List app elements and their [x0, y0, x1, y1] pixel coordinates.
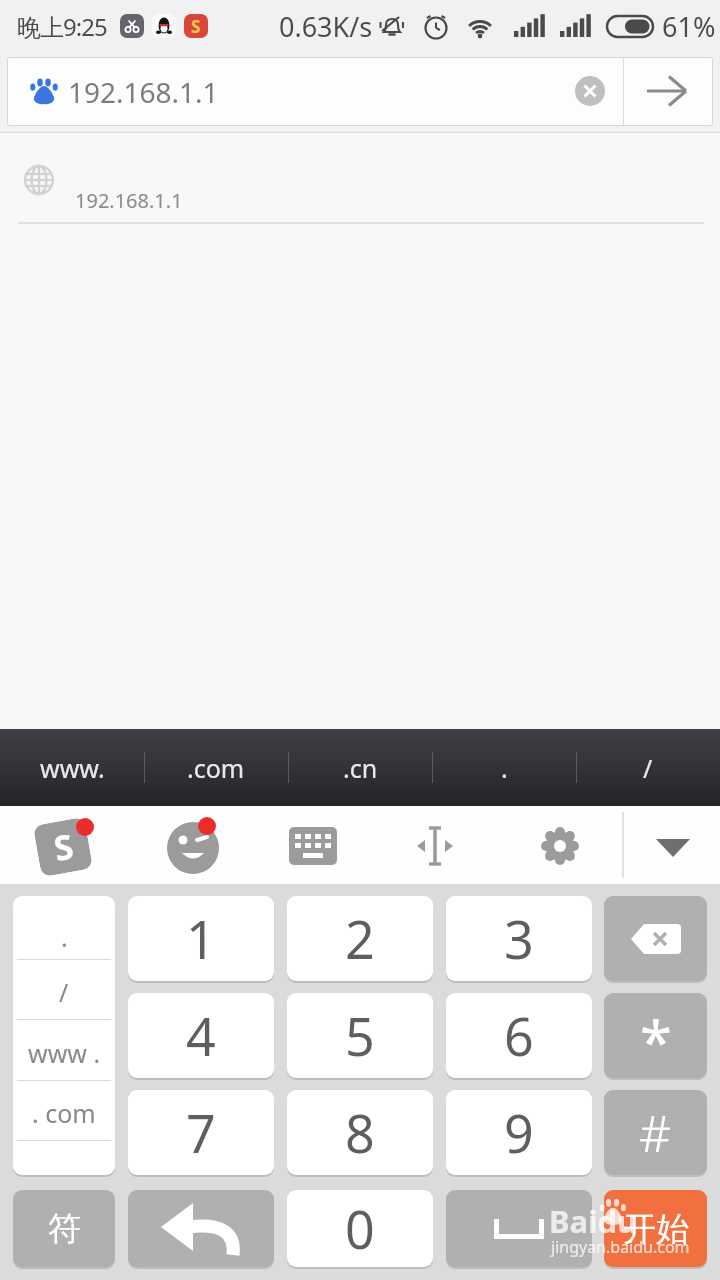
button[interactable]	[655, 838, 691, 858]
button[interactable]: 6	[446, 993, 592, 1078]
staticText: 61%	[662, 8, 716, 45]
staticText: /	[59, 975, 69, 1009]
staticText: 192.168.1.1	[68, 73, 219, 111]
staticText: 2	[345, 903, 375, 974]
button[interactable]	[604, 896, 707, 981]
staticText: 开始	[623, 1208, 689, 1250]
staticText: *	[640, 1002, 672, 1078]
button[interactable]: 4	[128, 993, 274, 1078]
button[interactable]	[575, 76, 605, 106]
button[interactable]: .	[13, 917, 115, 957]
staticText: Baidu	[549, 1200, 638, 1236]
button[interactable]	[413, 826, 457, 866]
button[interactable]: 1	[128, 896, 274, 981]
staticText: 6	[504, 1000, 534, 1071]
staticText: jingyan.baidu.com	[551, 1236, 690, 1258]
button[interactable]: .cn	[288, 729, 432, 806]
staticText: 8	[345, 1097, 375, 1168]
staticText: 0.63K/s	[279, 8, 373, 45]
staticText: . com	[32, 1096, 96, 1130]
staticText: 9	[504, 1097, 534, 1168]
staticText: .com	[187, 751, 245, 785]
staticText: 4	[186, 1000, 216, 1071]
button[interactable]: 8	[287, 1090, 433, 1175]
button[interactable]	[641, 76, 701, 106]
staticText: S	[191, 15, 201, 38]
staticText: #	[639, 1099, 672, 1167]
staticText: 192.168.1.1	[75, 187, 183, 214]
staticText: 3	[504, 903, 534, 974]
button[interactable]	[540, 826, 580, 866]
button[interactable]: 5	[287, 993, 433, 1078]
staticText: .	[61, 920, 68, 954]
staticText: www .	[28, 1036, 101, 1070]
staticText: /	[643, 751, 653, 785]
staticText: .	[501, 751, 508, 785]
button[interactable]: /	[13, 972, 115, 1012]
button[interactable]: 2	[287, 896, 433, 981]
button[interactable]	[128, 1190, 274, 1267]
staticText: 7	[186, 1097, 216, 1168]
button[interactable]: 192.168.1.1	[8, 58, 712, 125]
staticText: 0	[345, 1193, 375, 1264]
button[interactable]: /	[576, 729, 720, 806]
button[interactable]: 开始	[604, 1190, 707, 1267]
staticText: www.	[40, 751, 105, 785]
staticText: 晚上9:25	[17, 10, 107, 43]
button[interactable]: www.	[0, 729, 144, 806]
button[interactable]: S	[37, 821, 89, 873]
button[interactable]	[289, 827, 337, 865]
button[interactable]: 3	[446, 896, 592, 981]
button[interactable]: 7	[128, 1090, 274, 1175]
button[interactable]: .com	[144, 729, 288, 806]
button[interactable]: 0	[287, 1190, 433, 1267]
button[interactable]	[13, 896, 115, 1175]
button[interactable]: www .	[13, 1033, 115, 1073]
staticText: .cn	[343, 751, 378, 785]
button[interactable]: 9	[446, 1090, 592, 1175]
staticText: S	[50, 823, 77, 871]
button[interactable]	[446, 1190, 592, 1267]
staticText: 符	[48, 1208, 81, 1250]
button[interactable]: *	[604, 993, 707, 1078]
button[interactable]: .	[432, 729, 576, 806]
staticText: 1	[186, 903, 216, 974]
button[interactable]: 192.168.1.1	[0, 133, 720, 223]
button[interactable]: . com	[13, 1093, 115, 1133]
staticText: 5	[345, 1000, 375, 1071]
button[interactable]: #	[604, 1090, 707, 1175]
button[interactable]	[167, 822, 219, 874]
button[interactable]: 符	[13, 1190, 115, 1267]
